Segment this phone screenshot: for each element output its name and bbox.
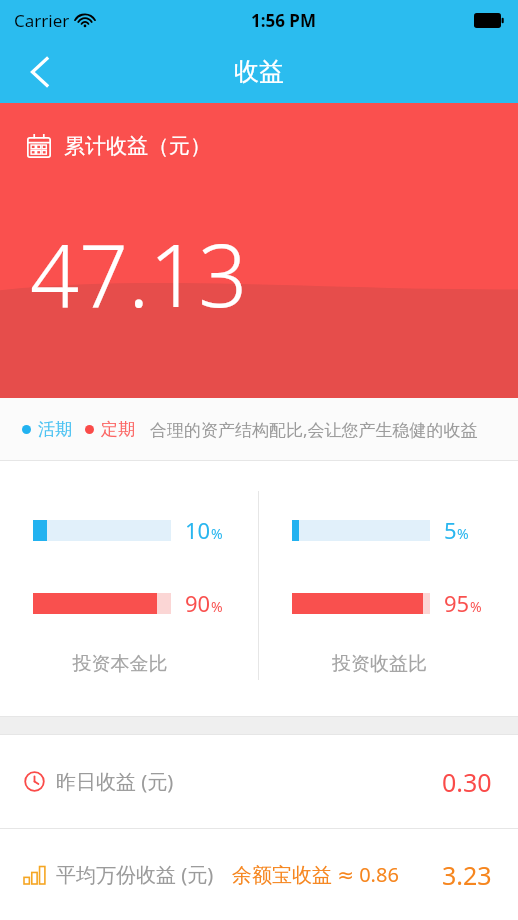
staticText: 余额宝收益 ≈ 0.86 — [232, 861, 399, 888]
button[interactable]: 平均万份收益 (元) — [0, 829, 518, 920]
staticText: % — [457, 524, 469, 543]
staticText: 95 — [444, 588, 470, 618]
button[interactable]: 昨日收益 (元) — [0, 735, 518, 828]
staticText: 平均万份收益 (元) — [56, 861, 214, 888]
staticText: 活期 — [38, 419, 72, 440]
staticText: 投资本金比 — [0, 652, 240, 676]
staticText: 1:56 PM — [251, 9, 316, 32]
staticText: 定期 — [101, 419, 135, 440]
staticText: 90 — [185, 588, 211, 618]
staticText: 累计收益（元） — [64, 133, 211, 159]
staticText: % — [211, 597, 223, 616]
staticText: 收益 — [234, 56, 284, 87]
staticText: % — [470, 597, 482, 616]
staticText: 0.30 — [442, 765, 492, 799]
staticText: % — [211, 524, 223, 543]
staticText: 10 — [185, 515, 211, 545]
staticText: 投资收益比 — [259, 652, 500, 676]
staticText: 5 — [444, 515, 457, 545]
staticText: 昨日收益 (元) — [56, 768, 174, 795]
staticText: 合理的资产结构配比,会让您产生稳健的收益 — [150, 418, 478, 441]
staticText: 3.23 — [442, 858, 492, 892]
staticText: 47.13 — [30, 215, 248, 332]
button[interactable]: Back — [16, 48, 64, 96]
staticText: Carrier — [14, 9, 70, 32]
